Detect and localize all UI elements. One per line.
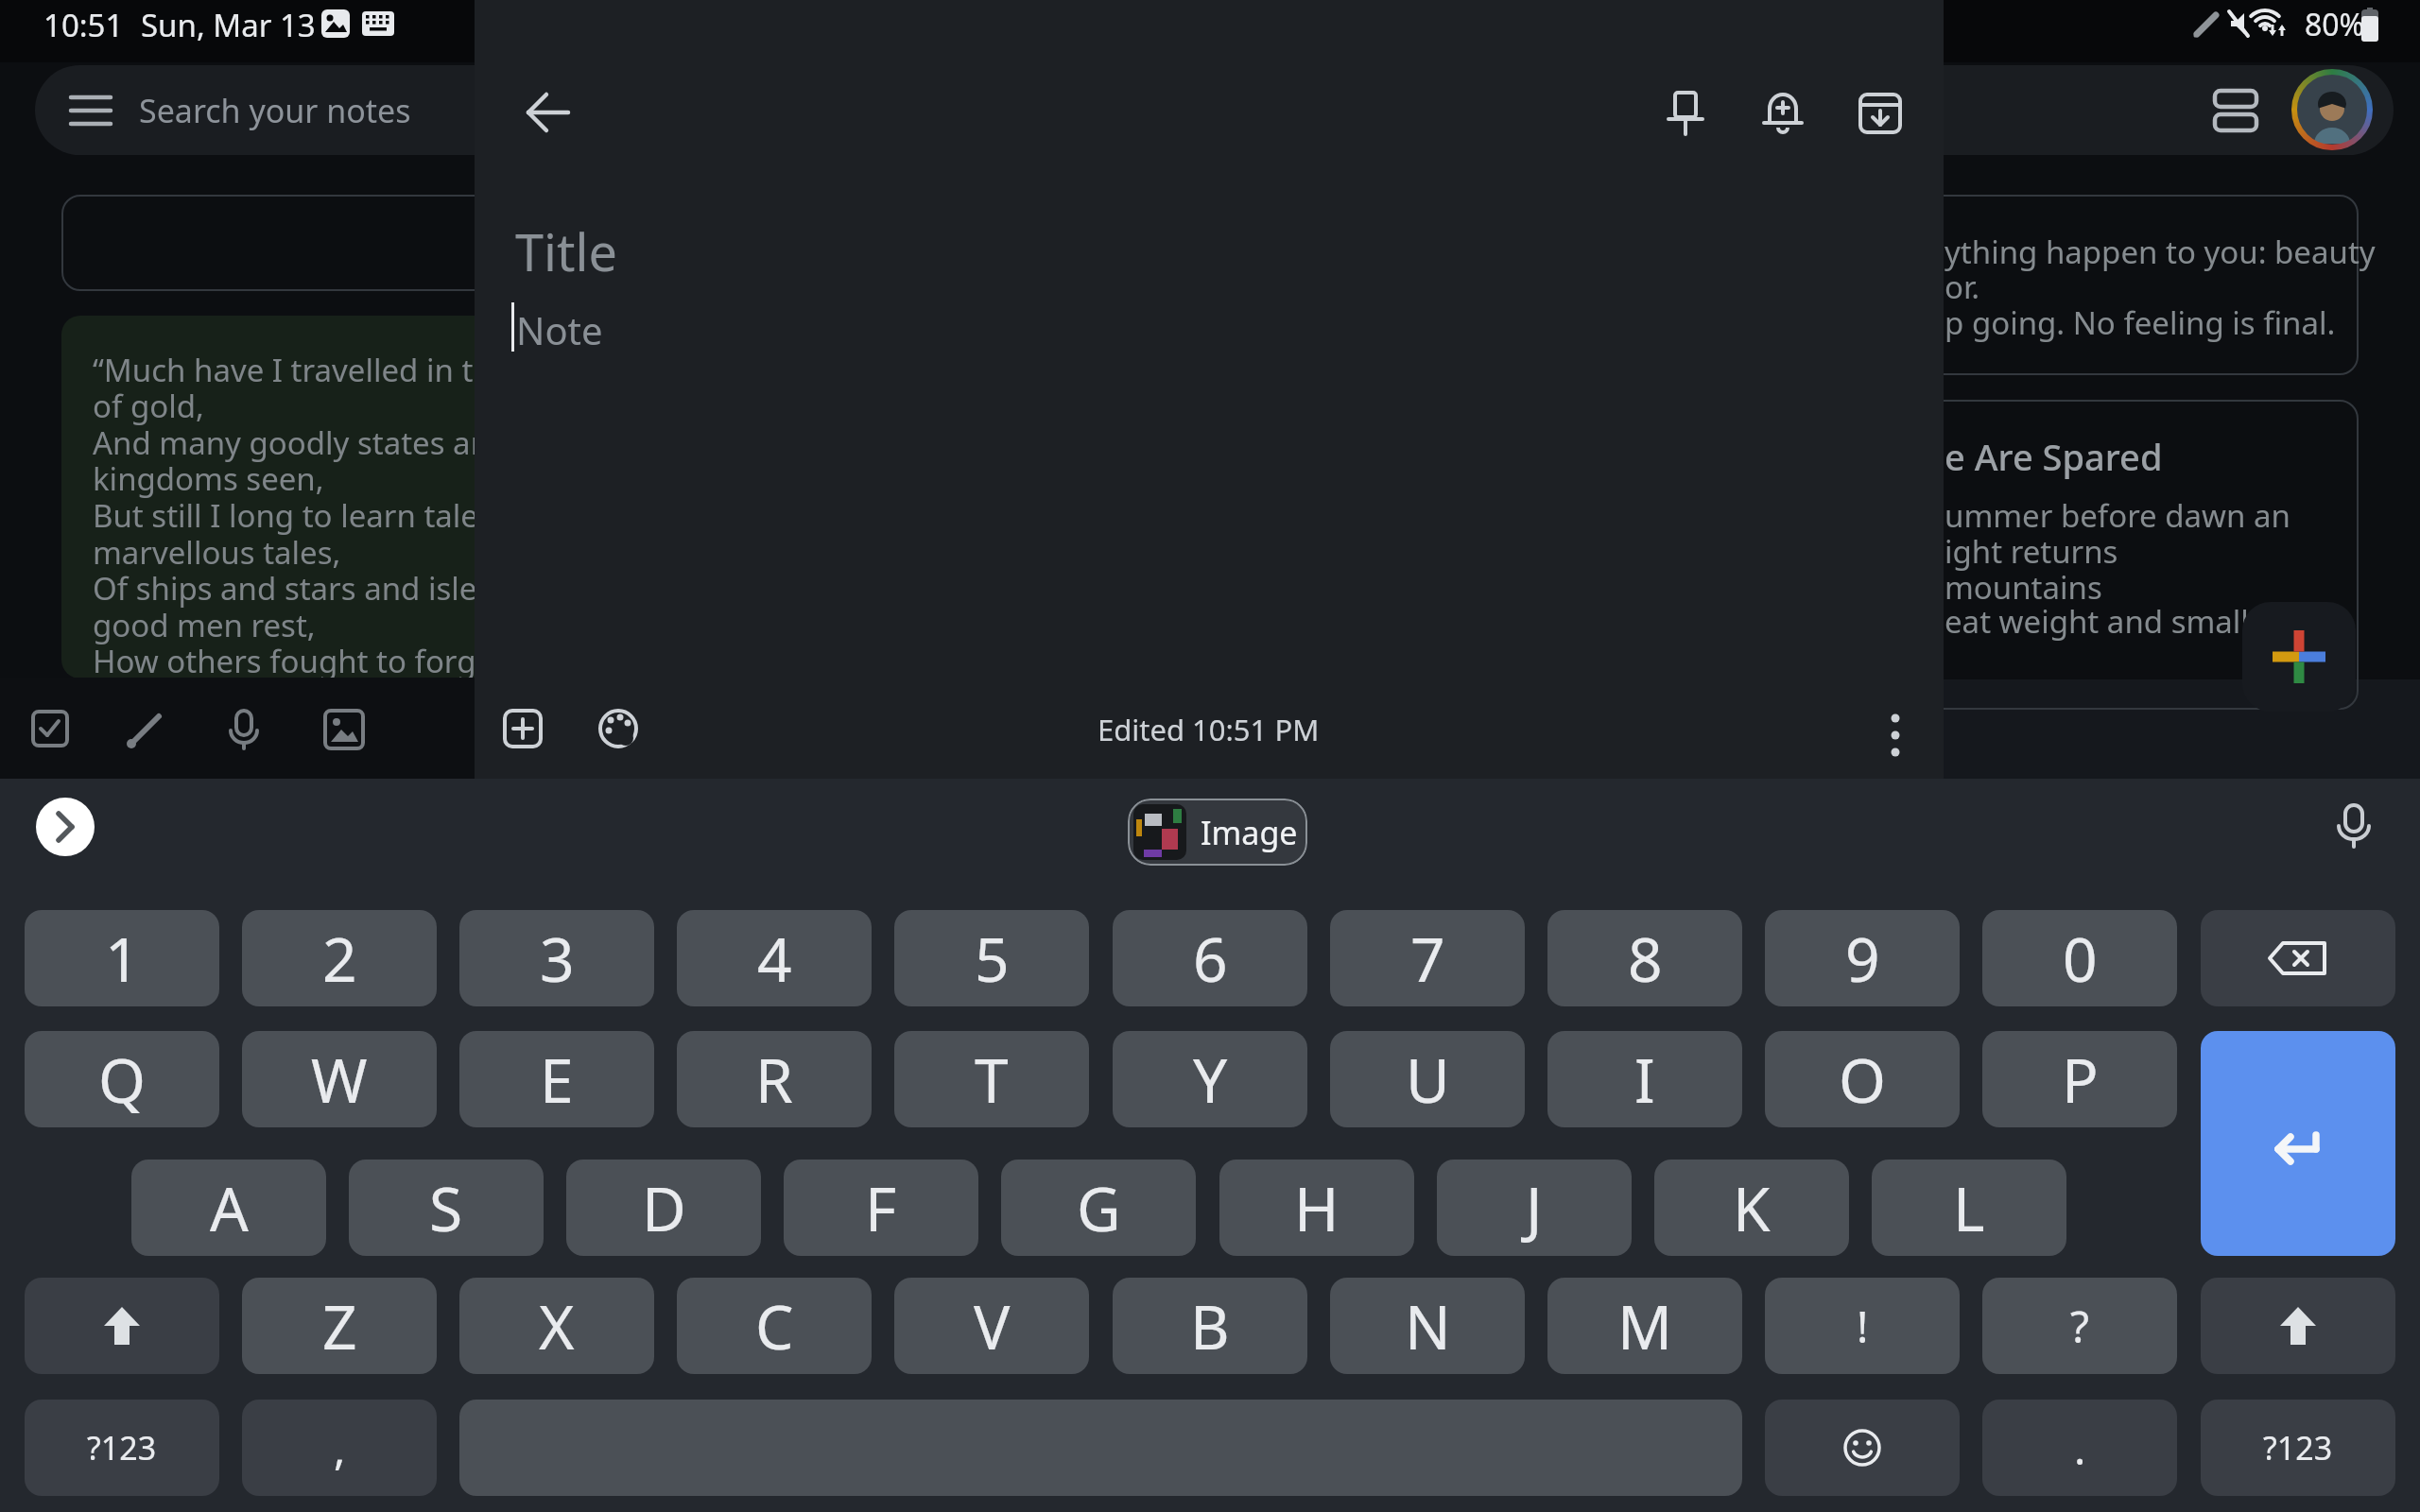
button[interactable]: H	[1219, 1160, 1414, 1256]
staticText: 10:51	[43, 4, 124, 46]
staticText: eat weight and small bi	[1945, 600, 2285, 643]
button[interactable]	[61, 316, 553, 679]
button[interactable]	[1760, 91, 1806, 136]
button[interactable]: ?	[1982, 1278, 2177, 1374]
staticText: B	[1190, 1285, 1230, 1367]
button[interactable]	[124, 707, 167, 750]
button[interactable]	[2201, 1031, 2395, 1256]
button[interactable]	[28, 707, 72, 750]
button[interactable]: ?123	[2201, 1400, 2395, 1496]
staticText: .	[2074, 1418, 2086, 1478]
button[interactable]	[1663, 91, 1708, 136]
button[interactable]: D	[566, 1160, 761, 1256]
staticText: R	[755, 1039, 793, 1121]
button[interactable]	[2327, 803, 2380, 852]
button[interactable]	[25, 1278, 219, 1374]
button[interactable]: S	[349, 1160, 544, 1256]
button[interactable]	[2291, 69, 2373, 150]
button[interactable]: W	[242, 1031, 437, 1127]
staticText: ?123	[2263, 1426, 2333, 1469]
button[interactable]: V	[894, 1278, 1089, 1374]
staticText: p going. No feeling is final.	[1945, 301, 2336, 344]
button[interactable]	[1858, 91, 1903, 136]
button[interactable]: M	[1547, 1278, 1742, 1374]
button[interactable]: !	[1765, 1278, 1960, 1374]
button[interactable]: 0	[1982, 910, 2177, 1006]
button[interactable]: Z	[242, 1278, 437, 1374]
button[interactable]: G	[1001, 1160, 1196, 1256]
staticText: ?	[2070, 1297, 2089, 1356]
staticText: Z	[322, 1285, 357, 1367]
staticText: 2	[322, 918, 357, 1000]
button[interactable]: F	[784, 1160, 978, 1256]
button[interactable]	[525, 90, 570, 135]
button[interactable]: Q	[25, 1031, 219, 1127]
button[interactable]	[222, 707, 266, 750]
staticText: F	[865, 1167, 897, 1249]
staticText: mountains	[1945, 566, 2102, 609]
staticText: N	[1405, 1285, 1451, 1367]
button[interactable]	[2242, 602, 2356, 712]
button[interactable]: 3	[459, 910, 654, 1006]
button[interactable]: K	[1654, 1160, 1849, 1256]
staticText: 8	[1628, 918, 1663, 1000]
button[interactable]	[597, 708, 639, 749]
staticText: W	[311, 1039, 368, 1121]
button[interactable]	[35, 65, 2394, 155]
button[interactable]: ?123	[25, 1400, 219, 1496]
button[interactable]: 5	[894, 910, 1089, 1006]
staticText: 0	[2063, 918, 2098, 1000]
button[interactable]: P	[1982, 1031, 2177, 1127]
button[interactable]	[1881, 195, 2359, 375]
button[interactable]	[320, 707, 364, 750]
button[interactable]: T	[894, 1031, 1089, 1127]
staticText: “Much have I travelled in the realms	[93, 349, 618, 391]
button[interactable]	[2201, 1278, 2395, 1374]
staticText: 6	[1193, 918, 1228, 1000]
staticText: 7	[1410, 918, 1445, 1000]
button[interactable]	[2201, 910, 2395, 1006]
button[interactable]: N	[1330, 1278, 1525, 1374]
button[interactable]: O	[1765, 1031, 1960, 1127]
button[interactable]: B	[1113, 1278, 1307, 1374]
button[interactable]: C	[677, 1278, 872, 1374]
button[interactable]: U	[1330, 1031, 1525, 1127]
button[interactable]	[61, 195, 553, 291]
button[interactable]: Y	[1113, 1031, 1307, 1127]
button[interactable]	[502, 708, 544, 749]
button[interactable]: 1	[25, 910, 219, 1006]
staticText: Y	[1193, 1039, 1228, 1121]
staticText: C	[755, 1285, 794, 1367]
button[interactable]: .	[1982, 1400, 2177, 1496]
staticText: V	[974, 1285, 1011, 1367]
staticText: of gold,	[93, 385, 204, 427]
button[interactable]: X	[459, 1278, 654, 1374]
button[interactable]: L	[1872, 1160, 2066, 1256]
staticText: I	[1634, 1039, 1655, 1121]
button[interactable]	[36, 798, 95, 856]
button[interactable]: J	[1437, 1160, 1632, 1256]
staticText: marvellous tales,	[93, 531, 341, 574]
button[interactable]: ,	[242, 1400, 437, 1496]
button[interactable]: 9	[1765, 910, 1960, 1006]
button[interactable]: 2	[242, 910, 437, 1006]
button[interactable]	[1881, 400, 2359, 710]
staticText: Note	[516, 304, 603, 355]
button[interactable]: 7	[1330, 910, 1525, 1006]
button[interactable]	[2210, 85, 2261, 136]
button[interactable]: R	[677, 1031, 872, 1127]
button[interactable]: 6	[1113, 910, 1307, 1006]
button[interactable]: I	[1547, 1031, 1742, 1127]
staticText: D	[642, 1167, 686, 1249]
staticText: good men rest,	[93, 604, 316, 646]
button[interactable]: A	[131, 1160, 326, 1256]
button[interactable]	[1876, 709, 1914, 762]
button[interactable]: E	[459, 1031, 654, 1127]
staticText: ?123	[87, 1426, 157, 1469]
button[interactable]: 8	[1547, 910, 1742, 1006]
staticText: P	[2062, 1039, 2099, 1121]
button[interactable]	[1765, 1400, 1960, 1496]
button[interactable]: 4	[677, 910, 872, 1006]
button[interactable]: Image	[1128, 799, 1307, 866]
